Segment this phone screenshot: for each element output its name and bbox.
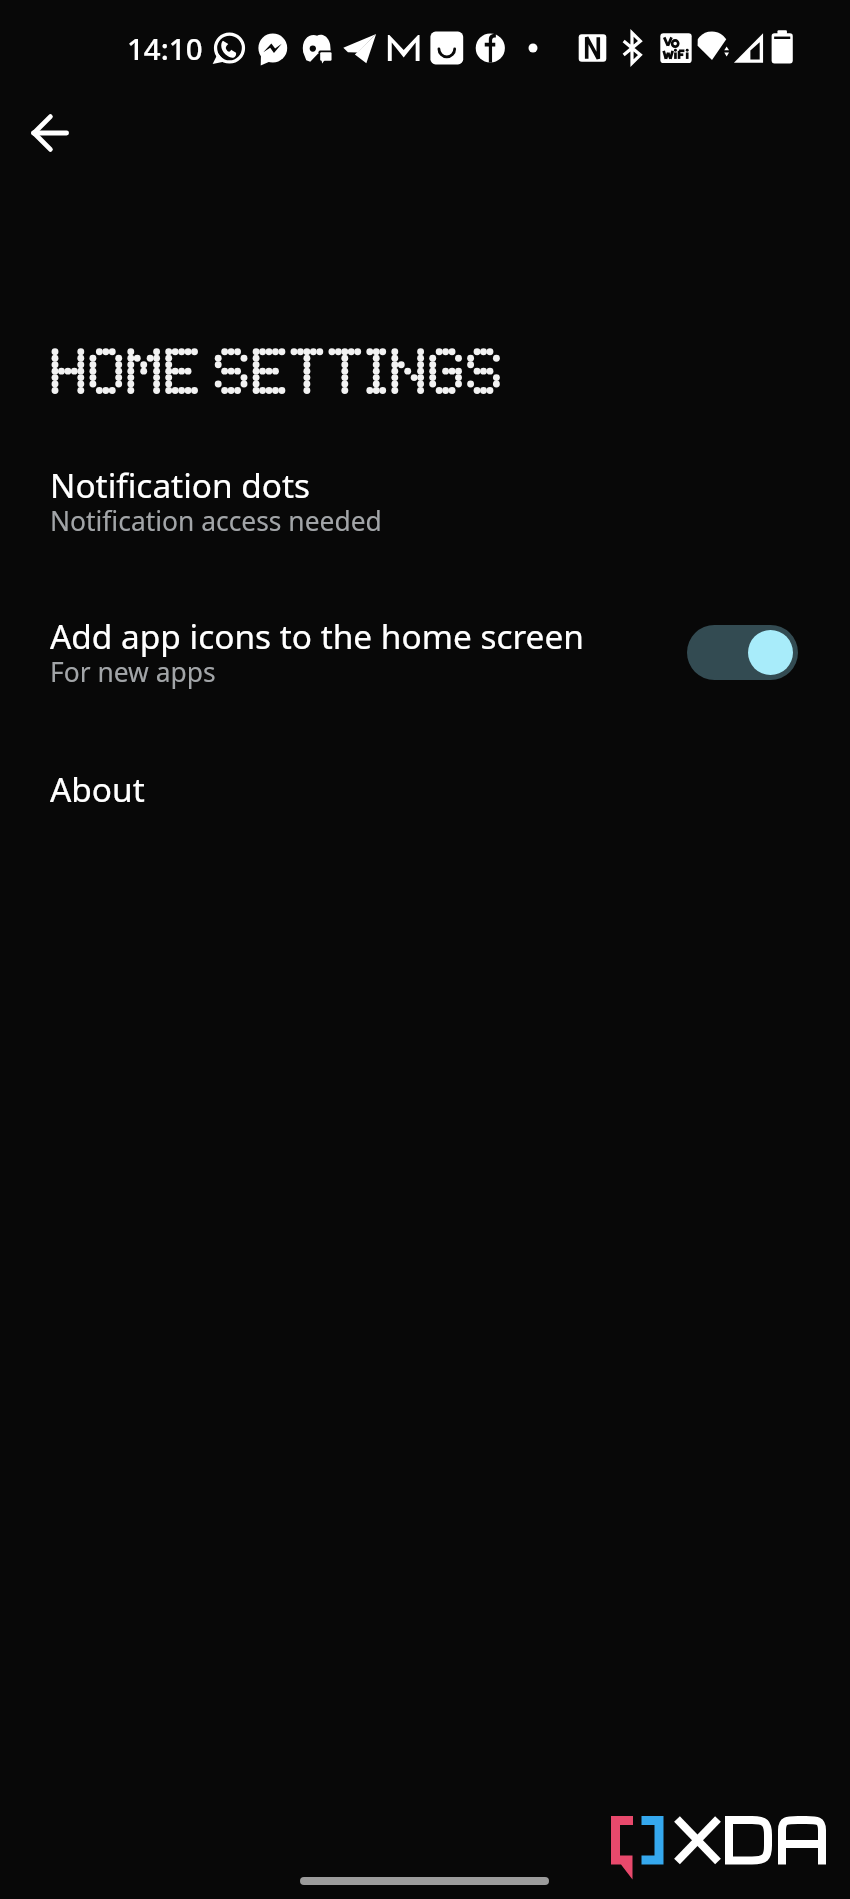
staticText: Notification dots	[50, 462, 311, 507]
button[interactable]: Notification dots	[0, 448, 850, 544]
staticText: Notification access needed	[50, 503, 382, 539]
staticText: 14:10	[127, 28, 203, 68]
button[interactable]: Navigate up	[14, 97, 86, 169]
staticText: For new apps	[50, 654, 216, 690]
button[interactable]: Add app icons to the home screen toggle	[687, 625, 798, 680]
button[interactable]: About	[0, 752, 850, 814]
staticText: Add app icons to the home screen	[50, 613, 584, 658]
staticText: About	[50, 766, 145, 811]
button[interactable]: Add app icons to the home screen	[0, 599, 850, 695]
